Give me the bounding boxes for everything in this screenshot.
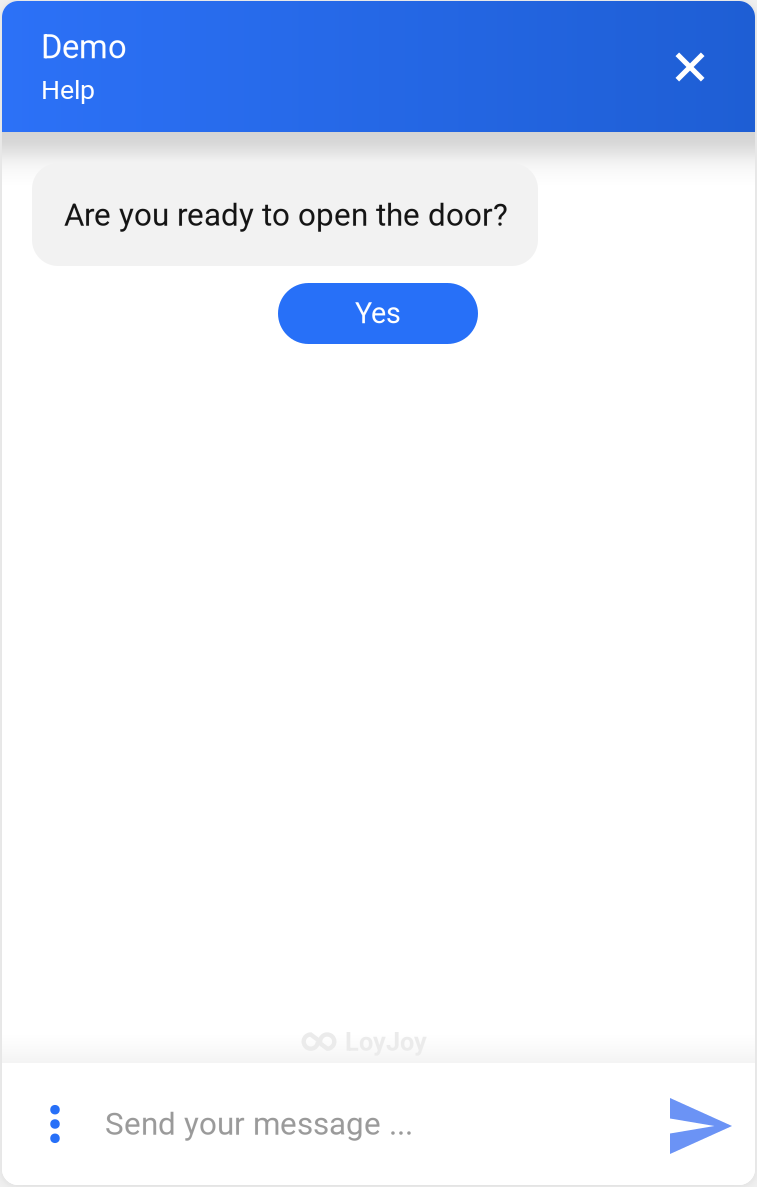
button[interactable]: More options <box>31 1094 79 1154</box>
staticText: Send your message ... <box>105 1106 413 1142</box>
button[interactable]: Yes <box>278 283 478 344</box>
staticText: LoyJoy <box>345 1027 427 1057</box>
staticText: Yes <box>355 297 401 330</box>
button[interactable]: Close <box>662 39 718 95</box>
staticText: Are you ready to open the door? <box>64 197 508 233</box>
staticText: Help <box>41 74 95 106</box>
button[interactable]: Send <box>664 1095 738 1157</box>
staticText: Demo <box>41 28 127 66</box>
